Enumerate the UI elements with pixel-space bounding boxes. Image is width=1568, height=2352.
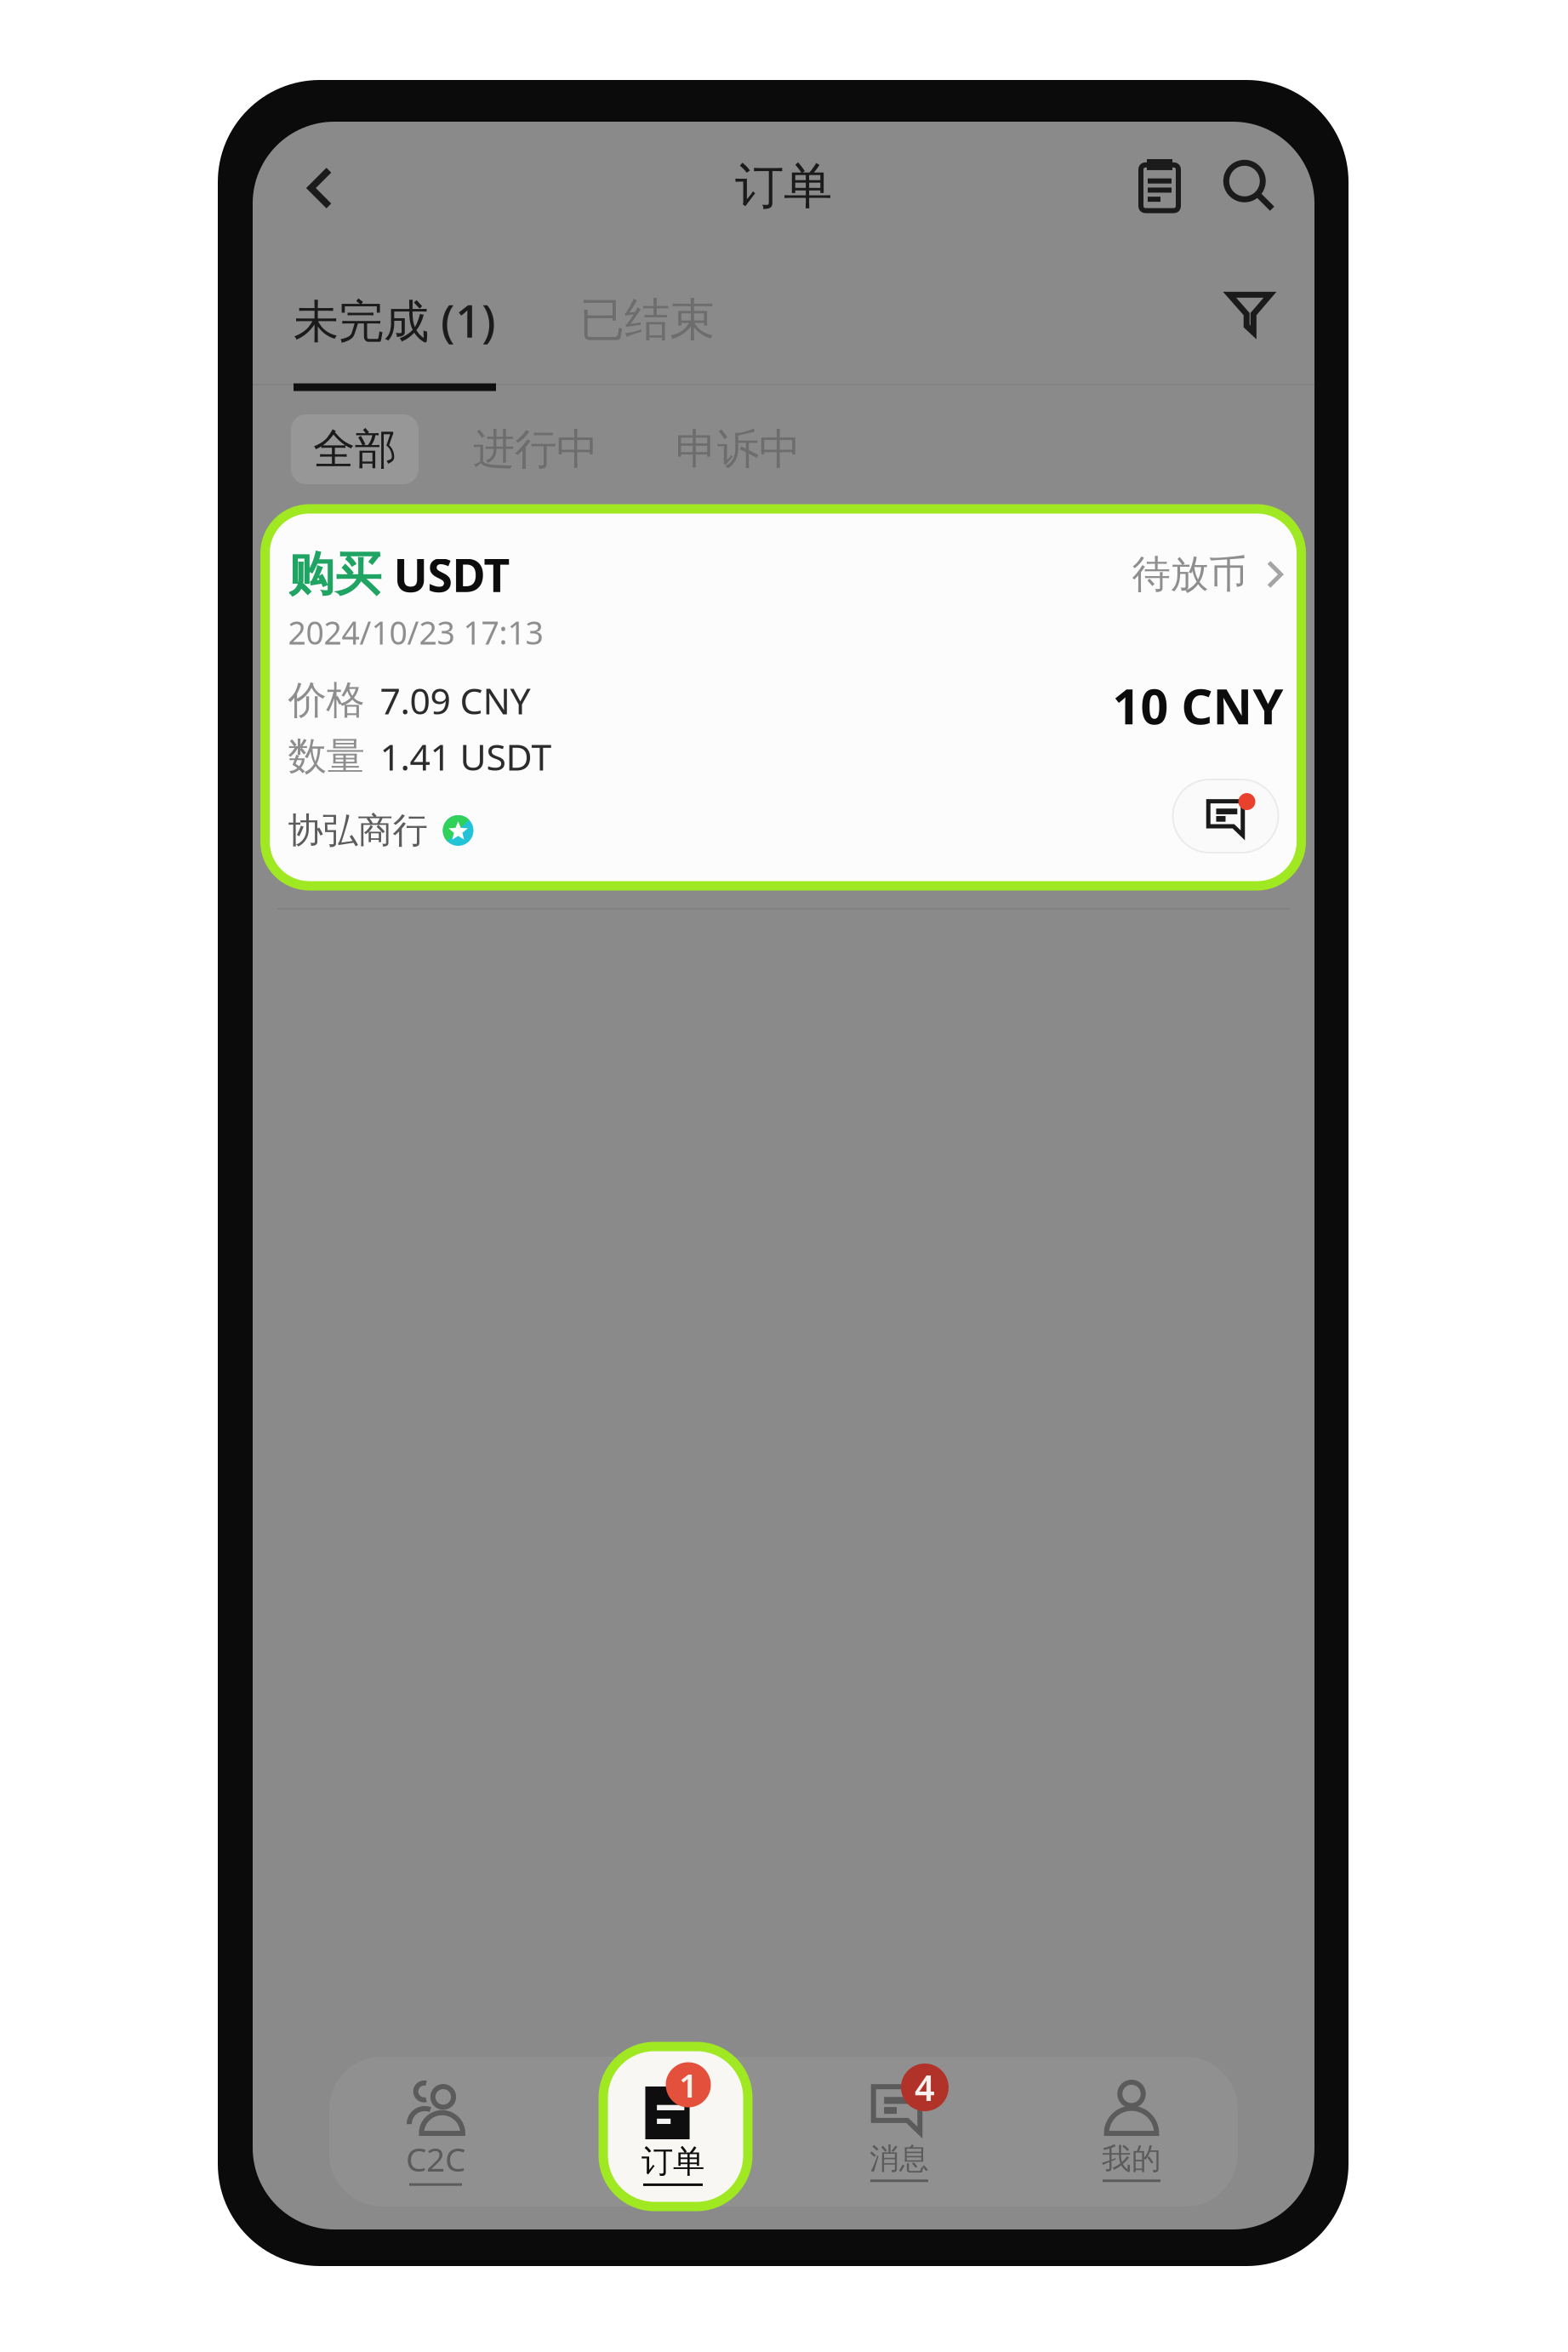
staticText: 我的: [1102, 2141, 1161, 2177]
staticText: USDT: [382, 544, 510, 605]
button[interactable]: Search: [1208, 145, 1290, 226]
staticText: 已结束: [579, 292, 715, 348]
button[interactable]: 购买: [265, 509, 1301, 886]
staticText: 订单: [641, 2142, 704, 2181]
button[interactable]: 1: [603, 2047, 748, 2206]
staticText: 协弘商行: [288, 809, 428, 852]
button[interactable]: Back: [279, 147, 361, 229]
staticText: 全部: [313, 424, 396, 475]
staticText: C2C: [406, 2137, 465, 2181]
button[interactable]: 已结束: [559, 273, 735, 367]
staticText: 7.09 CNY: [380, 676, 530, 724]
button[interactable]: Filter: [1211, 274, 1289, 352]
button[interactable]: C2C: [338, 2033, 533, 2212]
staticText: 10 CNY: [1112, 673, 1283, 738]
staticText: 1: [679, 2063, 698, 2107]
button[interactable]: Chat with merchant: [1173, 779, 1278, 853]
staticText: 2024/10/23 17:13: [288, 611, 543, 653]
staticText: 未完成 (1): [294, 290, 496, 350]
staticText: 订单: [735, 156, 832, 216]
staticText: 进行中: [473, 424, 598, 475]
button[interactable]: Order list: [1119, 146, 1200, 227]
staticText: 待放币: [1132, 551, 1247, 598]
button[interactable]: 申诉中: [676, 414, 801, 484]
staticText: 消息: [870, 2141, 929, 2177]
staticText: 4: [915, 2064, 935, 2111]
staticText: 价格: [288, 677, 365, 724]
staticText: 购买: [288, 546, 382, 603]
button[interactable]: 4: [801, 2033, 997, 2212]
button[interactable]: 我的: [1034, 2033, 1229, 2212]
staticText: 数量: [288, 733, 365, 780]
button[interactable]: 进行中: [473, 414, 598, 484]
staticText: 申诉中: [676, 424, 801, 475]
button[interactable]: 未完成 (1): [282, 271, 508, 369]
staticText: 1.41 USDT: [380, 732, 552, 781]
button[interactable]: 全部: [291, 414, 419, 484]
